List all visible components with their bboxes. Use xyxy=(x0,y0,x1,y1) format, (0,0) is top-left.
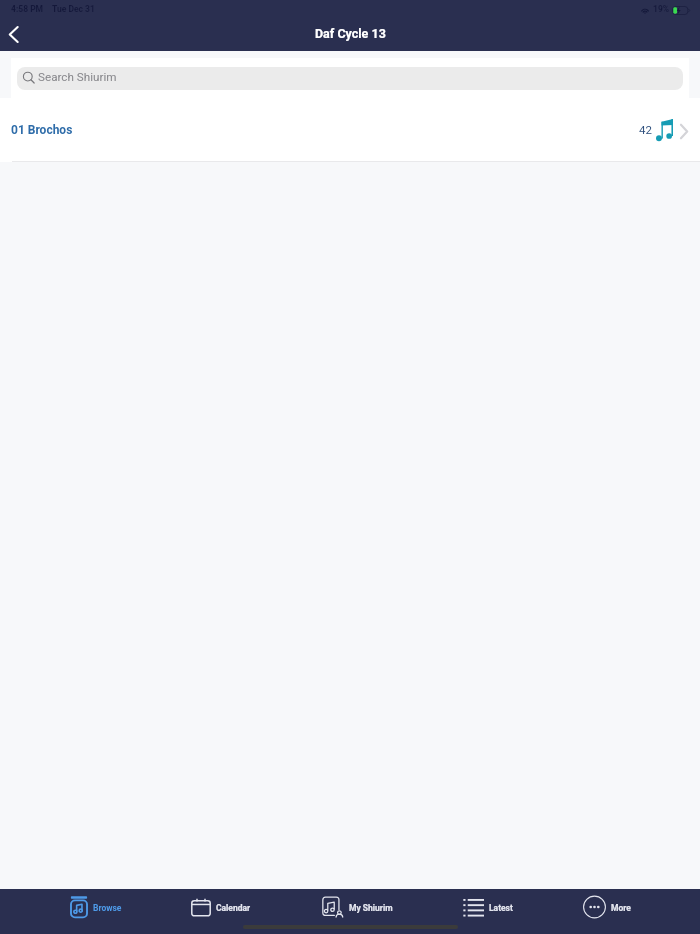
staticText: Search Shiurim xyxy=(38,70,117,84)
button[interactable]: Search Shiurim xyxy=(17,67,683,90)
button[interactable]: Browse xyxy=(70,896,122,918)
button[interactable]: My Shiurim xyxy=(321,896,393,918)
staticText: Browse xyxy=(93,903,122,913)
staticText: 19% xyxy=(653,4,670,14)
button[interactable]: More xyxy=(583,896,631,918)
staticText: My Shiurim xyxy=(349,903,393,913)
staticText: More xyxy=(611,903,631,913)
button[interactable]: 01 Brochos xyxy=(0,98,700,161)
button[interactable]: Calendar xyxy=(191,896,251,918)
staticText: Calendar xyxy=(216,903,251,913)
staticText: Latest xyxy=(489,903,513,913)
staticText: Daf Cycle 13 xyxy=(315,26,386,41)
staticText: Tue Dec 31 xyxy=(52,4,95,14)
staticText: 42 xyxy=(639,123,652,136)
staticText: 4:58 PM xyxy=(11,4,44,14)
button[interactable]: Back xyxy=(0,18,30,51)
button[interactable]: Latest xyxy=(462,896,513,918)
staticText: 01 Brochos xyxy=(11,123,73,137)
